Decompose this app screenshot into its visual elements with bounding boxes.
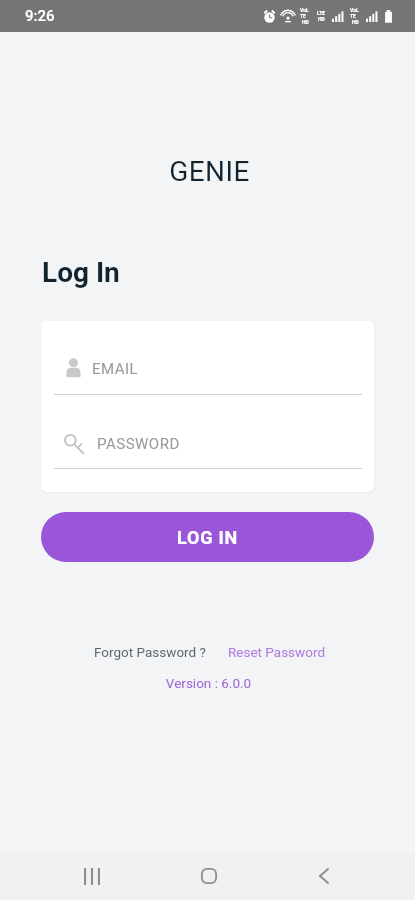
staticText: HD — [318, 16, 325, 22]
staticText: LTE — [317, 10, 326, 16]
button[interactable]: PASSWORD — [54, 433, 362, 469]
staticText: Log In — [42, 256, 120, 289]
staticText: LOG IN — [177, 527, 239, 548]
button[interactable]: Home — [185, 852, 233, 900]
staticText: HD — [302, 19, 309, 25]
button[interactable]: LOG IN — [41, 512, 374, 562]
staticText: PASSWORD — [97, 435, 180, 453]
button[interactable]: Recent apps — [68, 852, 116, 900]
staticText: VoLTE — [300, 7, 311, 19]
button[interactable]: EMAIL — [54, 358, 362, 395]
staticText: Reset Password — [228, 644, 325, 660]
staticText: 9:26 — [25, 7, 55, 25]
button[interactable]: Forgot Password ? — [94, 644, 206, 660]
staticText: VoLTE — [350, 7, 361, 19]
staticText: EMAIL — [92, 360, 139, 378]
button[interactable]: Reset Password — [228, 644, 325, 660]
staticText: Version : 6.0.0 — [1, 675, 415, 691]
staticText: Forgot Password ? — [94, 644, 206, 660]
staticText: HD — [352, 19, 359, 25]
button[interactable]: Back — [300, 852, 348, 900]
staticText: GENIE — [2, 155, 415, 188]
